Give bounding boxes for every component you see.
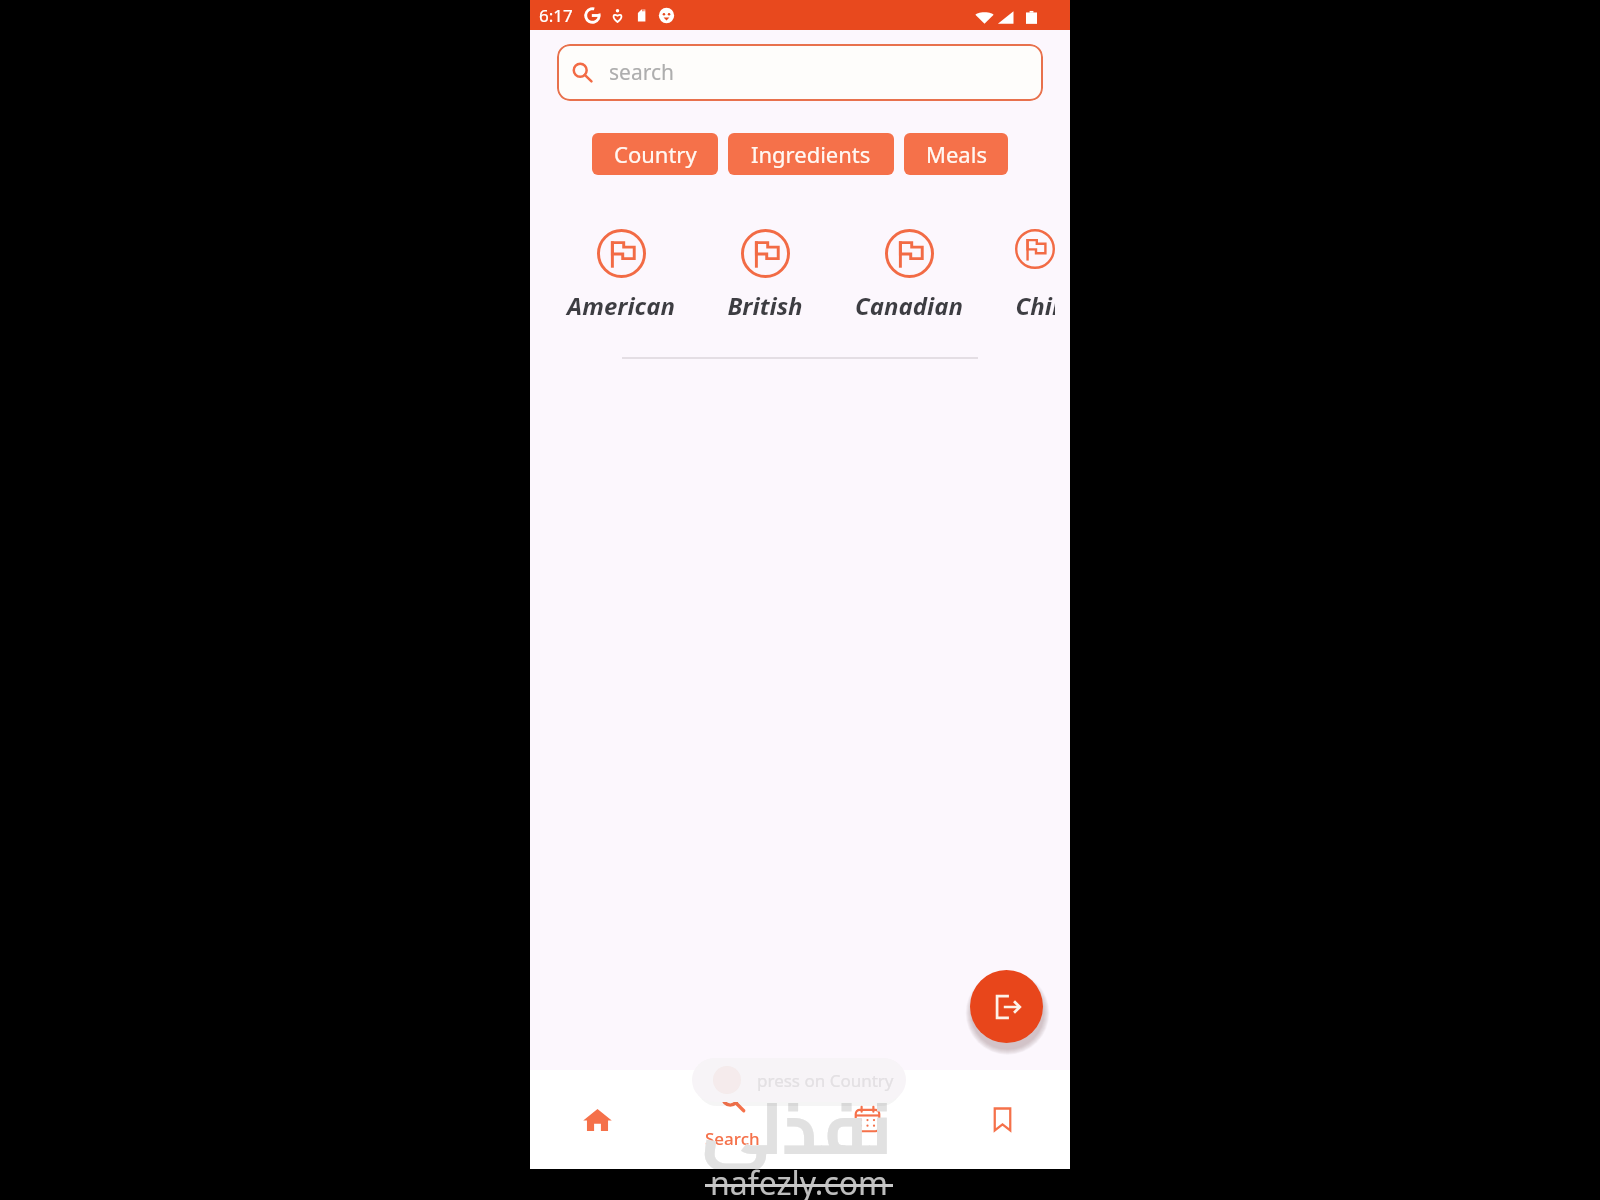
staticText: Meals — [926, 139, 987, 169]
staticText: American — [567, 289, 675, 322]
staticText: Country — [614, 139, 697, 169]
staticText: نفذلي — [702, 1060, 892, 1169]
staticText: search — [609, 58, 674, 87]
staticText: nafezly.com — [710, 1161, 889, 1200]
button[interactable]: Home — [530, 1070, 665, 1169]
staticText: Chinese — [1015, 289, 1055, 322]
button[interactable]: Search — [665, 1070, 800, 1169]
staticText: 6:17 — [539, 4, 573, 27]
button[interactable]: British — [701, 229, 829, 322]
staticText: Search — [705, 1127, 760, 1150]
staticText: British — [727, 289, 803, 322]
button[interactable]: Country — [592, 133, 718, 175]
staticText: Ingredients — [751, 139, 871, 169]
staticText: Canadian — [855, 289, 963, 322]
button[interactable]: Bookmark — [935, 1070, 1070, 1169]
button[interactable]: Chinese — [989, 229, 1070, 322]
staticText: press on Country — [757, 1069, 894, 1092]
button[interactable]: Calendar — [800, 1070, 935, 1169]
button[interactable]: Logout — [970, 970, 1043, 1043]
button[interactable]: Canadian — [829, 229, 989, 322]
button[interactable]: Search field — [557, 44, 1043, 101]
button[interactable]: American — [541, 229, 701, 322]
button[interactable]: Meals — [904, 133, 1008, 175]
button[interactable]: Ingredients — [728, 133, 894, 175]
